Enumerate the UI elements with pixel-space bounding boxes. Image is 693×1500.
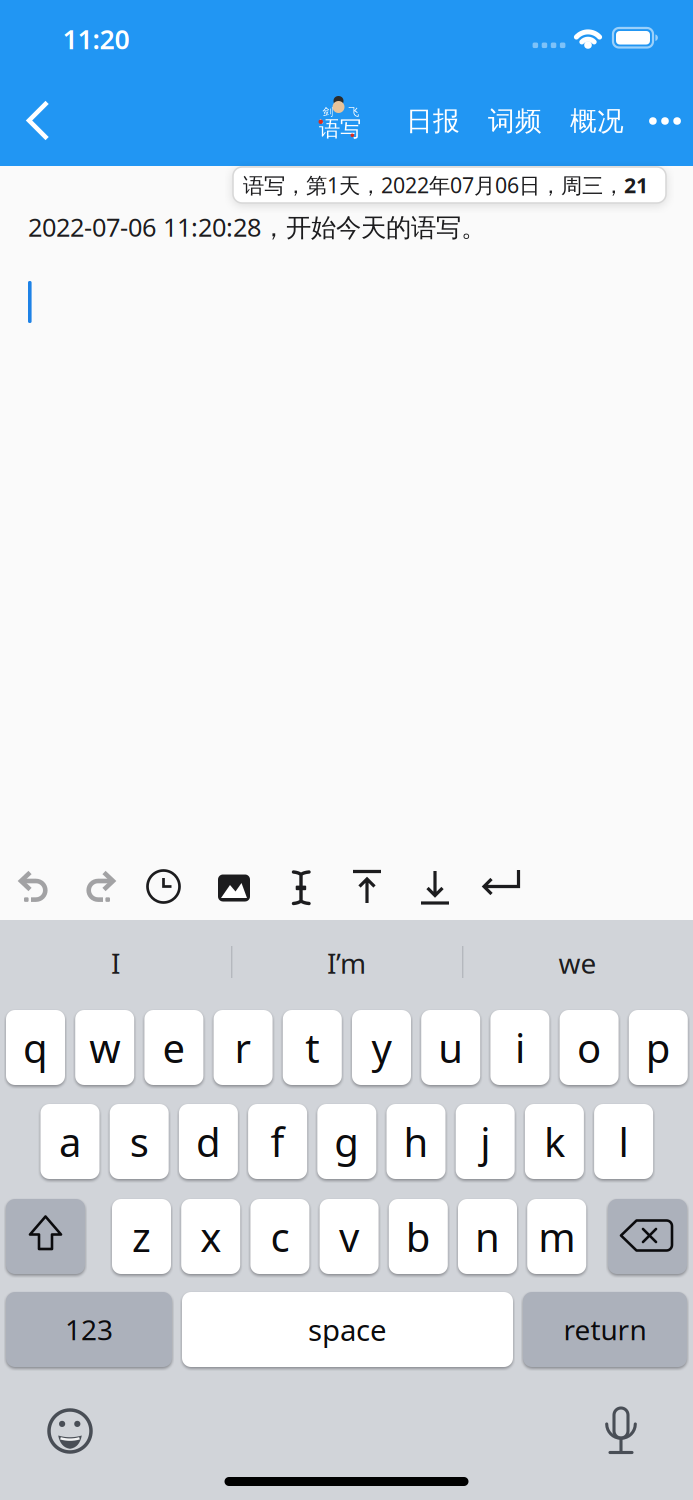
button[interactable]: [1, 856, 67, 922]
button[interactable]: e: [144, 1010, 203, 1085]
staticText: o: [577, 1021, 601, 1074]
staticText: a: [59, 1115, 81, 1168]
staticText: q: [23, 1021, 48, 1074]
button[interactable]: j: [456, 1104, 515, 1179]
button[interactable]: [37, 1398, 103, 1464]
staticText: u: [438, 1021, 463, 1074]
button[interactable]: 日报: [395, 99, 471, 143]
staticText: e: [162, 1021, 185, 1074]
staticText: t: [305, 1021, 319, 1074]
button[interactable]: q: [6, 1010, 65, 1085]
button[interactable]: I: [3, 930, 228, 996]
staticText: we: [558, 944, 596, 982]
button[interactable]: x: [181, 1199, 240, 1274]
button[interactable]: m: [527, 1199, 586, 1274]
button[interactable]: h: [386, 1104, 445, 1179]
staticText: f: [271, 1115, 285, 1168]
staticText: c: [270, 1210, 289, 1263]
staticText: 21: [624, 171, 648, 199]
staticText: z: [132, 1210, 151, 1263]
button[interactable]: [608, 1199, 687, 1274]
button[interactable]: n: [458, 1199, 517, 1274]
button[interactable]: 词频: [477, 99, 553, 143]
staticText: 语写，第1天，2022年07月06日，周三，: [243, 171, 624, 199]
button[interactable]: [130, 853, 196, 919]
button[interactable]: return: [523, 1292, 687, 1367]
staticText: p: [646, 1021, 671, 1074]
staticText: 2022-07-06 11:20:28，开始今天的语写。: [28, 210, 486, 244]
button[interactable]: y: [352, 1010, 411, 1085]
button[interactable]: v: [320, 1199, 379, 1274]
button[interactable]: l: [594, 1104, 653, 1179]
button[interactable]: z: [112, 1199, 171, 1274]
button[interactable]: [201, 855, 267, 921]
staticText: w: [89, 1021, 120, 1074]
button[interactable]: p: [629, 1010, 688, 1085]
button[interactable]: [15, 92, 59, 148]
staticText: i: [515, 1021, 525, 1074]
staticText: 飞: [348, 105, 359, 118]
button[interactable]: k: [525, 1104, 584, 1179]
button[interactable]: t: [283, 1010, 342, 1085]
staticText: h: [403, 1115, 428, 1168]
staticText: d: [196, 1115, 221, 1168]
button[interactable]: o: [560, 1010, 619, 1085]
button[interactable]: [468, 849, 534, 915]
staticText: I’m: [327, 944, 366, 982]
staticText: space: [308, 1310, 387, 1349]
staticText: return: [563, 1311, 646, 1348]
button[interactable]: 123: [6, 1292, 172, 1367]
staticText: 剑: [322, 105, 333, 118]
button[interactable]: a: [40, 1104, 99, 1179]
button[interactable]: g: [317, 1104, 376, 1179]
staticText: 语写: [319, 116, 361, 142]
button[interactable]: w: [75, 1010, 134, 1085]
staticText: g: [334, 1115, 359, 1168]
button[interactable]: [334, 854, 400, 920]
staticText: j: [480, 1115, 490, 1168]
button[interactable]: f: [248, 1104, 307, 1179]
button[interactable]: u: [421, 1010, 480, 1085]
staticText: v: [339, 1210, 359, 1263]
button[interactable]: r: [214, 1010, 273, 1085]
button[interactable]: s: [110, 1104, 169, 1179]
staticText: I: [111, 944, 120, 982]
staticText: 日报: [406, 105, 460, 137]
staticText: b: [406, 1210, 431, 1263]
staticText: 概况: [570, 105, 624, 137]
button[interactable]: i: [490, 1010, 549, 1085]
staticText: n: [475, 1210, 500, 1263]
staticText: m: [538, 1210, 575, 1263]
button[interactable]: [640, 99, 690, 143]
staticText: x: [200, 1210, 221, 1263]
button[interactable]: d: [179, 1104, 238, 1179]
button[interactable]: [268, 855, 334, 921]
button[interactable]: I’m: [234, 930, 459, 996]
button[interactable]: space: [182, 1292, 513, 1367]
button[interactable]: [402, 854, 468, 920]
staticText: k: [544, 1115, 565, 1168]
staticText: l: [619, 1115, 629, 1168]
button[interactable]: we: [465, 930, 690, 996]
button[interactable]: c: [250, 1199, 309, 1274]
staticText: r: [235, 1021, 252, 1074]
button[interactable]: b: [389, 1199, 448, 1274]
button[interactable]: [6, 1199, 85, 1274]
staticText: s: [130, 1115, 149, 1168]
button[interactable]: [588, 1397, 654, 1463]
button[interactable]: [67, 856, 133, 922]
button[interactable]: 概况: [559, 99, 635, 143]
staticText: y: [371, 1021, 391, 1074]
staticText: 11:20: [62, 21, 129, 57]
staticText: 123: [65, 1311, 113, 1348]
staticText: 词频: [488, 105, 542, 137]
